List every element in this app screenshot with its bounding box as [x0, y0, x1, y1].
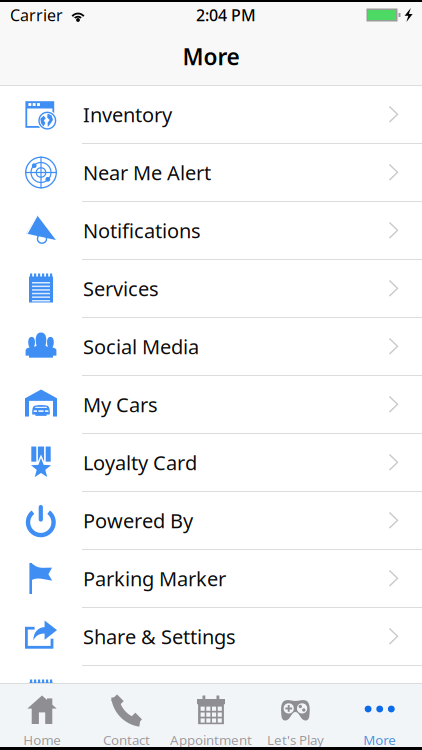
staticText: 2:04 PM [196, 4, 256, 26]
staticText: My Cars [83, 391, 158, 418]
button[interactable]: Let's Play [253, 684, 338, 747]
staticText: Share & Settings [83, 623, 236, 650]
staticText: Inventory [83, 101, 172, 128]
button[interactable]: Loyalty Card [0, 434, 422, 492]
staticText: More [363, 731, 396, 749]
staticText: Notifications [83, 217, 201, 244]
button[interactable]: Appointment [169, 684, 253, 747]
button[interactable]: Near Me Alert [0, 144, 422, 202]
button[interactable]: Social Media [0, 318, 422, 376]
staticText: Language [83, 681, 174, 708]
button[interactable]: Notifications [0, 202, 422, 260]
button[interactable]: Home [0, 684, 84, 747]
staticText: More [182, 41, 239, 71]
button[interactable]: Inventory [0, 86, 422, 144]
staticText: Carrier [10, 4, 63, 26]
staticText: Contact [103, 731, 150, 749]
staticText: Parking Marker [83, 565, 226, 592]
staticText: Social Media [83, 333, 199, 360]
staticText: Loyalty Card [83, 449, 197, 476]
staticText: Powered By [83, 507, 193, 534]
button[interactable]: Parking Marker [0, 550, 422, 608]
button[interactable]: Powered By [0, 492, 422, 550]
staticText: Services [83, 275, 159, 302]
staticText: Home [23, 731, 61, 749]
staticText: Let's Play [267, 731, 324, 749]
button[interactable]: More [338, 684, 422, 747]
button[interactable]: Language [0, 666, 422, 724]
button[interactable]: Services [0, 260, 422, 318]
button[interactable]: Share & Settings [0, 608, 422, 666]
staticText: Appointment [170, 731, 252, 749]
staticText: Near Me Alert [83, 159, 211, 186]
button[interactable]: My Cars [0, 376, 422, 434]
button[interactable]: Contact [84, 684, 169, 747]
